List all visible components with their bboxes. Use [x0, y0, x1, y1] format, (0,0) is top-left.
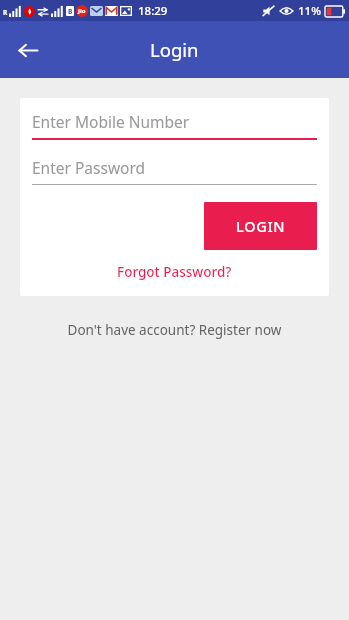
button[interactable]: Don't have account? Register now — [0, 317, 349, 343]
staticText: Forgot Password? — [117, 263, 232, 281]
button[interactable]: Back — [8, 30, 48, 70]
staticText: Enter Password — [32, 157, 146, 178]
button[interactable]: Enter Mobile Number — [32, 111, 317, 140]
staticText: Enter Mobile Number — [32, 111, 190, 132]
button[interactable]: Forgot Password? — [111, 260, 238, 284]
button[interactable]: LOGIN — [204, 202, 317, 250]
staticText: 11% — [298, 3, 321, 19]
staticText: Jio — [78, 7, 86, 15]
staticText: Login — [150, 37, 199, 62]
staticText: 18:29 — [138, 3, 168, 19]
staticText: LOGIN — [236, 216, 286, 236]
staticText: B — [68, 7, 73, 16]
button[interactable]: Enter Password — [32, 157, 317, 185]
staticText: R — [3, 8, 8, 17]
